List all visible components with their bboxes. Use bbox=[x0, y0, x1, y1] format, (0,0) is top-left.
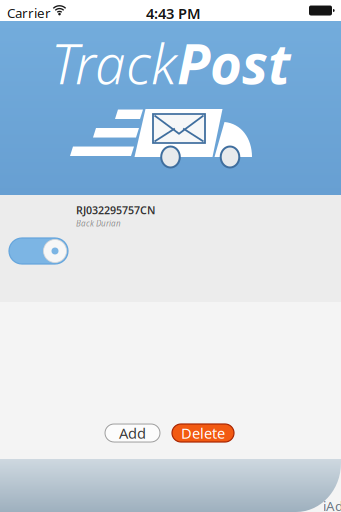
staticText: Post bbox=[177, 27, 290, 99]
staticText: Add bbox=[119, 423, 146, 443]
staticText: iAd bbox=[323, 497, 341, 512]
button[interactable]: Add bbox=[105, 424, 160, 442]
button[interactable] bbox=[9, 238, 68, 264]
button[interactable]: Delete bbox=[172, 424, 234, 442]
staticText: 4:43 PM bbox=[146, 3, 201, 23]
staticText: Carrier bbox=[7, 4, 51, 22]
staticText: Back Durian bbox=[76, 218, 121, 229]
staticText: Track bbox=[51, 27, 177, 99]
button[interactable]: iAd advertisement bbox=[0, 459, 341, 512]
staticText: Delete bbox=[181, 423, 225, 443]
staticText: RJ032295757CN bbox=[76, 203, 155, 217]
